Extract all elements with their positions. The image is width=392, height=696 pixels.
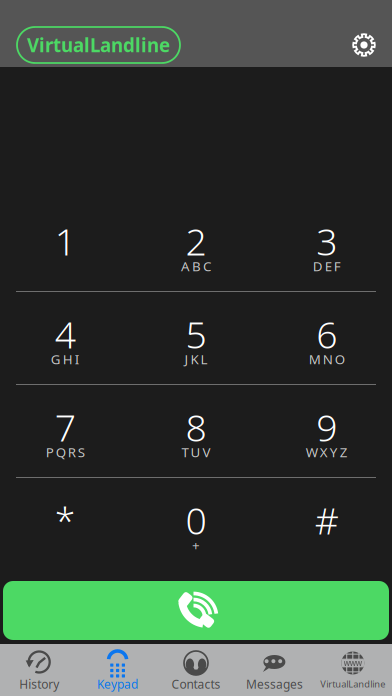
staticText: D E F xyxy=(313,257,341,275)
button[interactable]: 3 xyxy=(261,199,392,291)
staticText: A B C xyxy=(181,257,211,275)
staticText: VirtualLandline xyxy=(27,33,170,57)
button[interactable]: 5 xyxy=(131,292,261,384)
button[interactable]: 4 xyxy=(0,292,131,384)
staticText: History xyxy=(19,676,59,692)
staticText: VirtualLandline xyxy=(320,678,385,690)
staticText: + xyxy=(192,536,200,554)
button[interactable]: Settings xyxy=(349,30,379,60)
button[interactable]: Keypad xyxy=(78,644,157,696)
button[interactable]: Call xyxy=(3,581,389,640)
staticText: 5 xyxy=(185,309,206,359)
staticText: 4 xyxy=(55,309,76,359)
staticText: Keypad xyxy=(97,676,138,692)
staticText: 0 xyxy=(185,495,206,545)
staticText: 1 xyxy=(55,216,76,266)
button[interactable]: 2 xyxy=(131,199,261,291)
button[interactable]: * xyxy=(0,478,131,570)
staticText: www xyxy=(344,658,362,668)
button[interactable]: Messages xyxy=(235,644,314,696)
button[interactable]: 8 xyxy=(131,385,261,477)
button[interactable]: VirtualLandline xyxy=(17,27,180,63)
staticText: 8 xyxy=(185,402,206,452)
button[interactable]: 9 xyxy=(261,385,392,477)
staticText: T U V xyxy=(181,443,210,461)
button[interactable]: 1 xyxy=(0,199,131,291)
staticText: 3 xyxy=(316,216,337,266)
staticText: # xyxy=(315,495,339,545)
staticText: 9 xyxy=(316,402,337,452)
staticText: 2 xyxy=(185,216,206,266)
staticText: P Q R S xyxy=(46,443,85,461)
staticText: Contacts xyxy=(171,676,220,692)
staticText: 6 xyxy=(316,309,337,359)
staticText: M N O xyxy=(309,350,345,368)
staticText: Messages xyxy=(246,676,303,692)
staticText: 7 xyxy=(55,402,76,452)
button[interactable]: 6 xyxy=(261,292,392,384)
staticText: G H I xyxy=(51,350,80,368)
button[interactable]: History xyxy=(0,644,78,696)
button[interactable]: # xyxy=(261,478,392,570)
staticText: J K L xyxy=(184,350,207,368)
button[interactable]: 7 xyxy=(0,385,131,477)
staticText: * xyxy=(55,495,76,545)
button[interactable]: Contacts xyxy=(157,644,235,696)
button[interactable]: 0 xyxy=(131,478,261,570)
button[interactable]: www xyxy=(314,644,392,696)
staticText: W X Y Z xyxy=(306,443,348,461)
